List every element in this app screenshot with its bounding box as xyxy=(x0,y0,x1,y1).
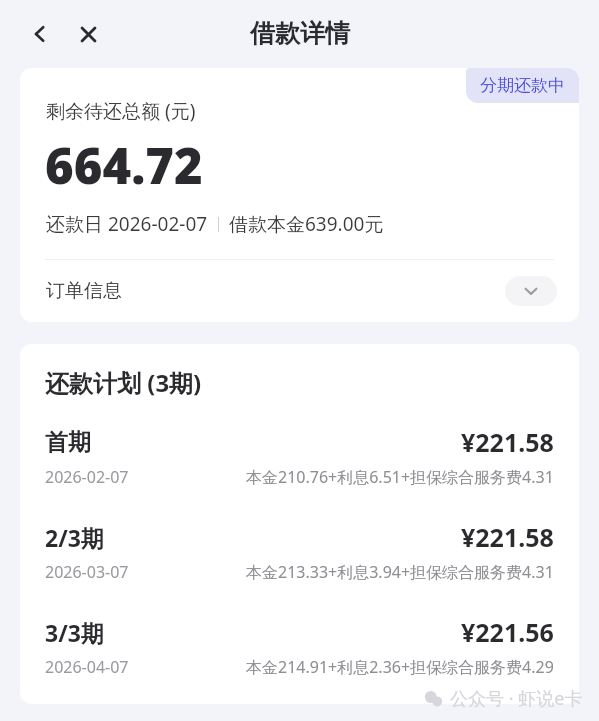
staticText: 本金213.33+利息3.94+担保综合服务费4.31 xyxy=(246,561,554,583)
staticText: 2026-04-07 xyxy=(45,656,129,678)
staticText: 借款本金639.00元 xyxy=(229,211,384,237)
button[interactable]: 首期 xyxy=(20,425,579,488)
staticText: 还款计划 (3期) xyxy=(45,366,202,399)
button[interactable]: Back xyxy=(20,14,60,54)
staticText: 2026-02-07 xyxy=(45,466,129,488)
staticText: 664.72 xyxy=(45,132,203,199)
staticText: 2026-03-07 xyxy=(45,561,129,583)
staticText: 还款日 2026-02-07 xyxy=(46,211,208,237)
staticText: 2/3期 xyxy=(45,522,104,553)
button[interactable]: 订单信息 xyxy=(20,260,579,322)
staticText: ¥221.58 xyxy=(461,520,554,554)
staticText: 本金214.91+利息2.36+担保综合服务费4.29 xyxy=(246,656,554,678)
staticText: 首期 xyxy=(45,428,91,457)
button[interactable]: Close xyxy=(68,14,108,54)
staticText: 订单信息 xyxy=(46,279,122,303)
staticText: 借款详情 xyxy=(250,18,350,49)
staticText: 分期还款中 xyxy=(480,75,565,96)
staticText: 3/3期 xyxy=(45,617,104,648)
staticText: ¥221.56 xyxy=(461,615,554,649)
staticText: 公众号 · 虾说e卡 xyxy=(450,686,583,711)
staticText: ¥221.58 xyxy=(461,425,554,459)
button[interactable]: 2/3期 xyxy=(20,520,579,583)
staticText: 剩余待还总额 (元) xyxy=(46,98,196,124)
button[interactable]: 3/3期 xyxy=(20,615,579,678)
staticText: 本金210.76+利息6.51+担保综合服务费4.31 xyxy=(246,466,554,488)
